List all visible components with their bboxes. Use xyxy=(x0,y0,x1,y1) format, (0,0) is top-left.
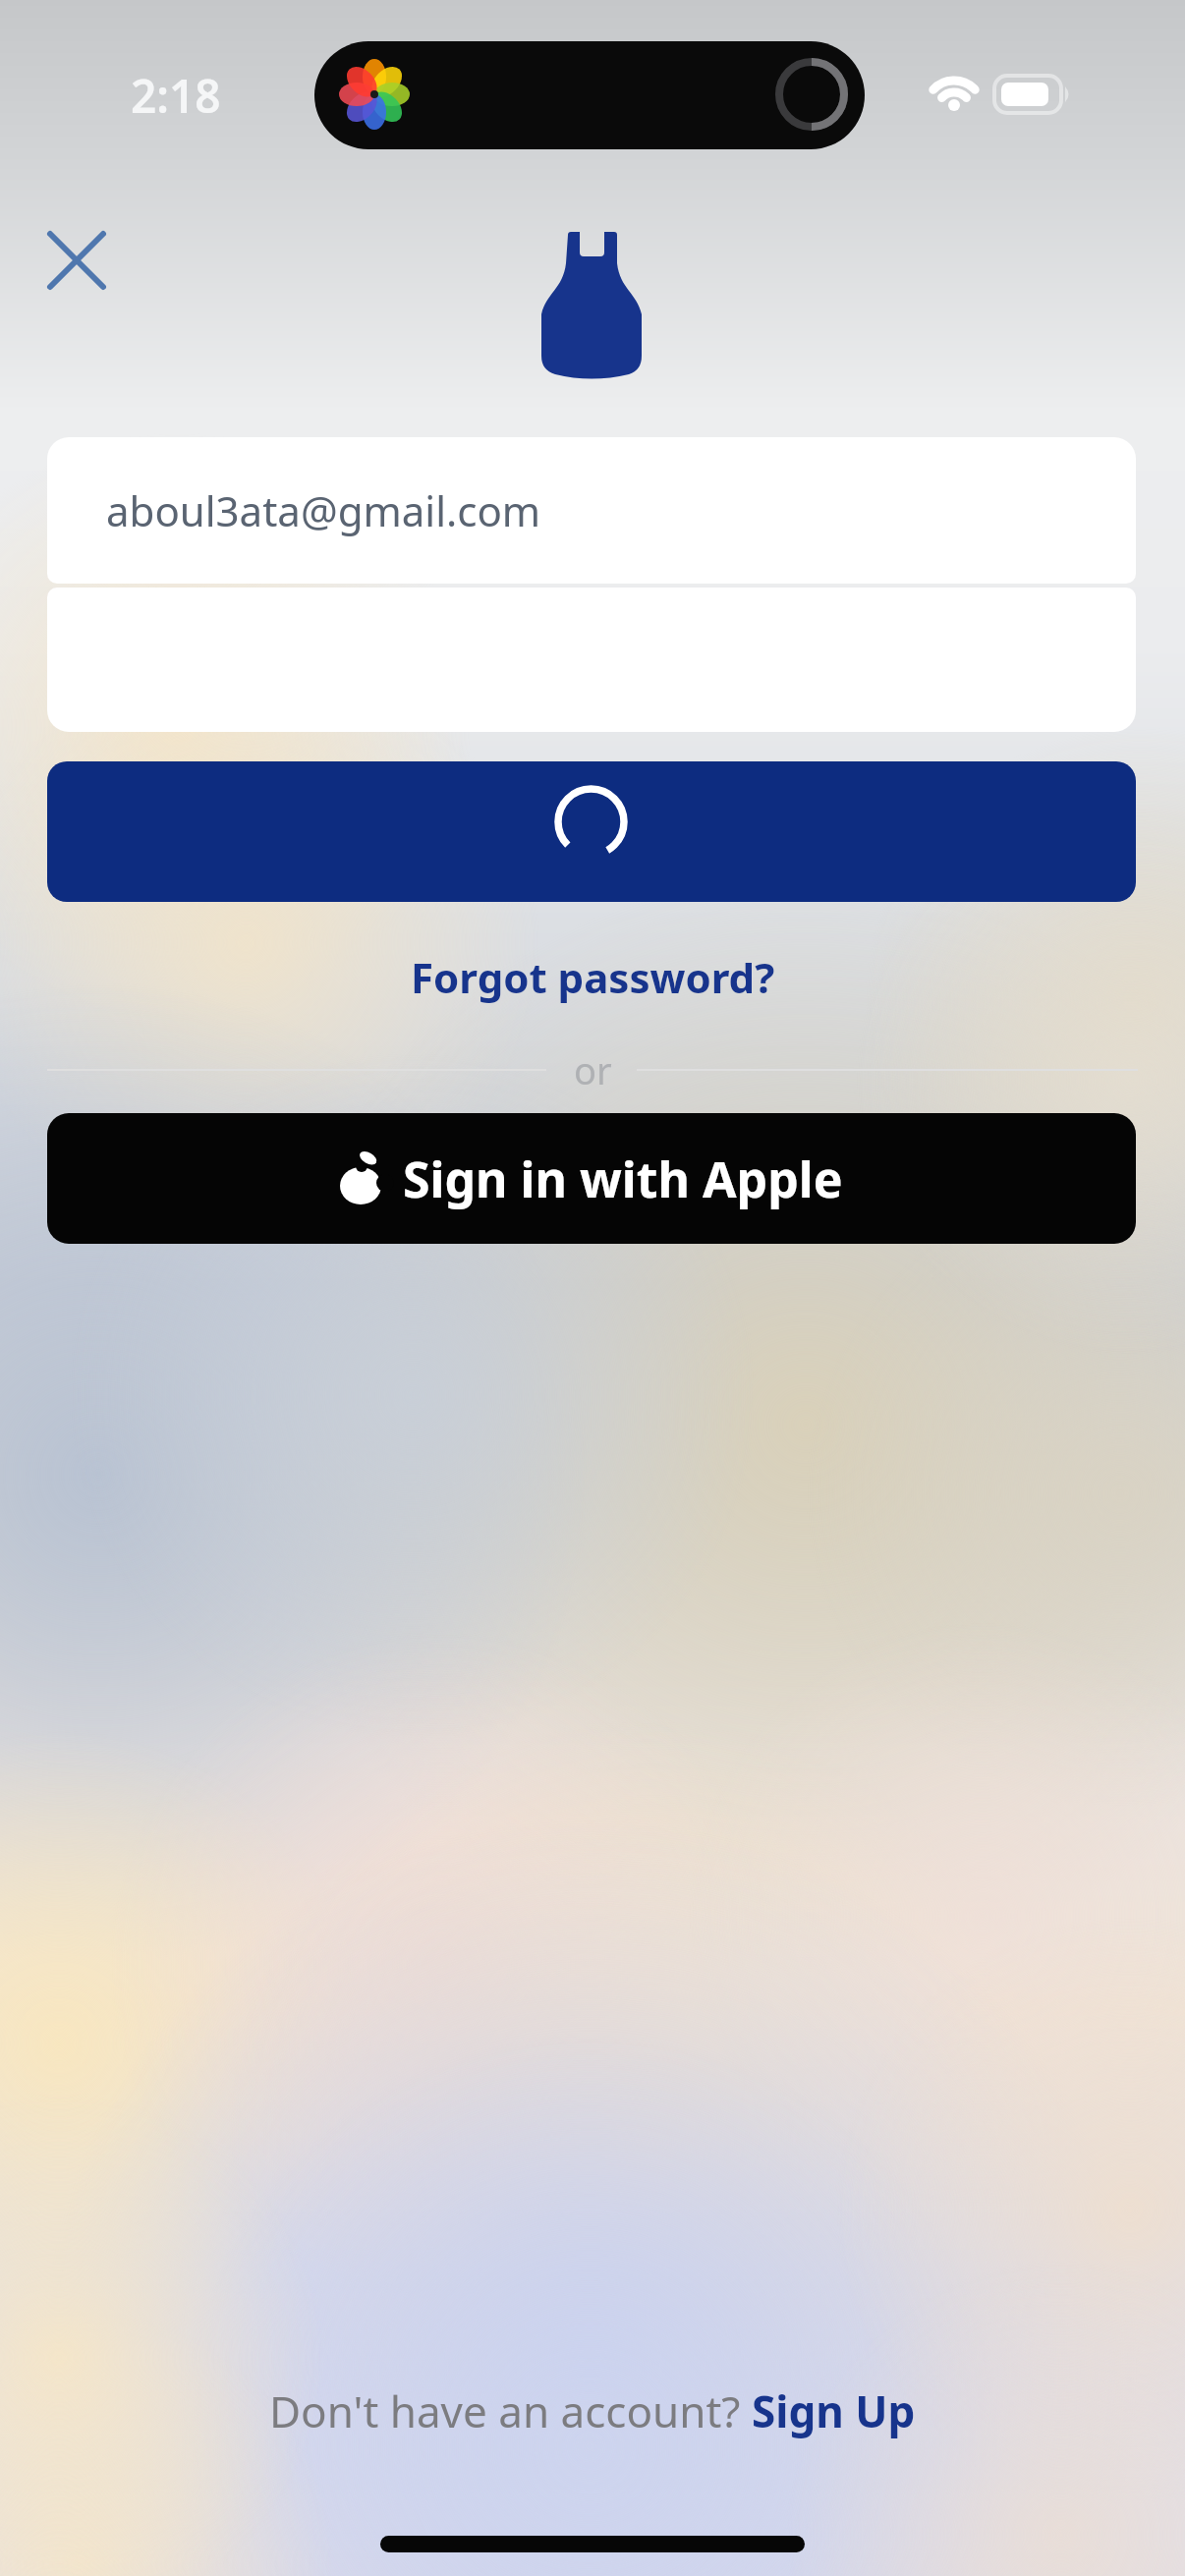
staticText: or xyxy=(574,1044,612,1095)
staticText: aboul3ata@gmail.com xyxy=(106,482,541,538)
staticText: 2:18 xyxy=(131,65,221,127)
button[interactable]: Sign Up xyxy=(752,2381,916,2440)
staticText: Sign in with Apple xyxy=(403,1146,843,1212)
button[interactable]: Sign in with Apple xyxy=(47,1113,1136,1244)
button[interactable] xyxy=(28,211,126,309)
button[interactable]: Forgot password? xyxy=(411,949,775,1005)
staticText: Don't have an account? xyxy=(269,2381,752,2440)
button[interactable]: aboul3ata@gmail.com xyxy=(47,437,1136,584)
button[interactable] xyxy=(47,761,1136,902)
